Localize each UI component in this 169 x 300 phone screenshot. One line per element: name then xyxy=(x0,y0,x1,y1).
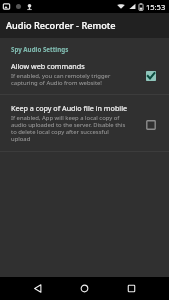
button[interactable]: Recents xyxy=(108,277,155,300)
staticText: Allow web commands xyxy=(11,61,85,71)
staticText: Keep a copy of Audio file in mobile xyxy=(11,103,128,113)
staticText: If enabled, App will keep a local copy o… xyxy=(11,114,128,143)
button[interactable]: Allow web commands xyxy=(0,55,169,94)
button[interactable]: Home xyxy=(61,277,108,300)
button[interactable]: Keep a copy of Audio file in mobile xyxy=(0,95,169,151)
staticText: Spy Audio Settings xyxy=(11,45,69,53)
button[interactable]: Back xyxy=(14,277,61,300)
staticText: Audio Recorder - Remote xyxy=(6,19,116,32)
staticText: If enabled, you can remotely trigger cap… xyxy=(11,72,128,87)
staticText: 15:53 xyxy=(146,2,166,12)
